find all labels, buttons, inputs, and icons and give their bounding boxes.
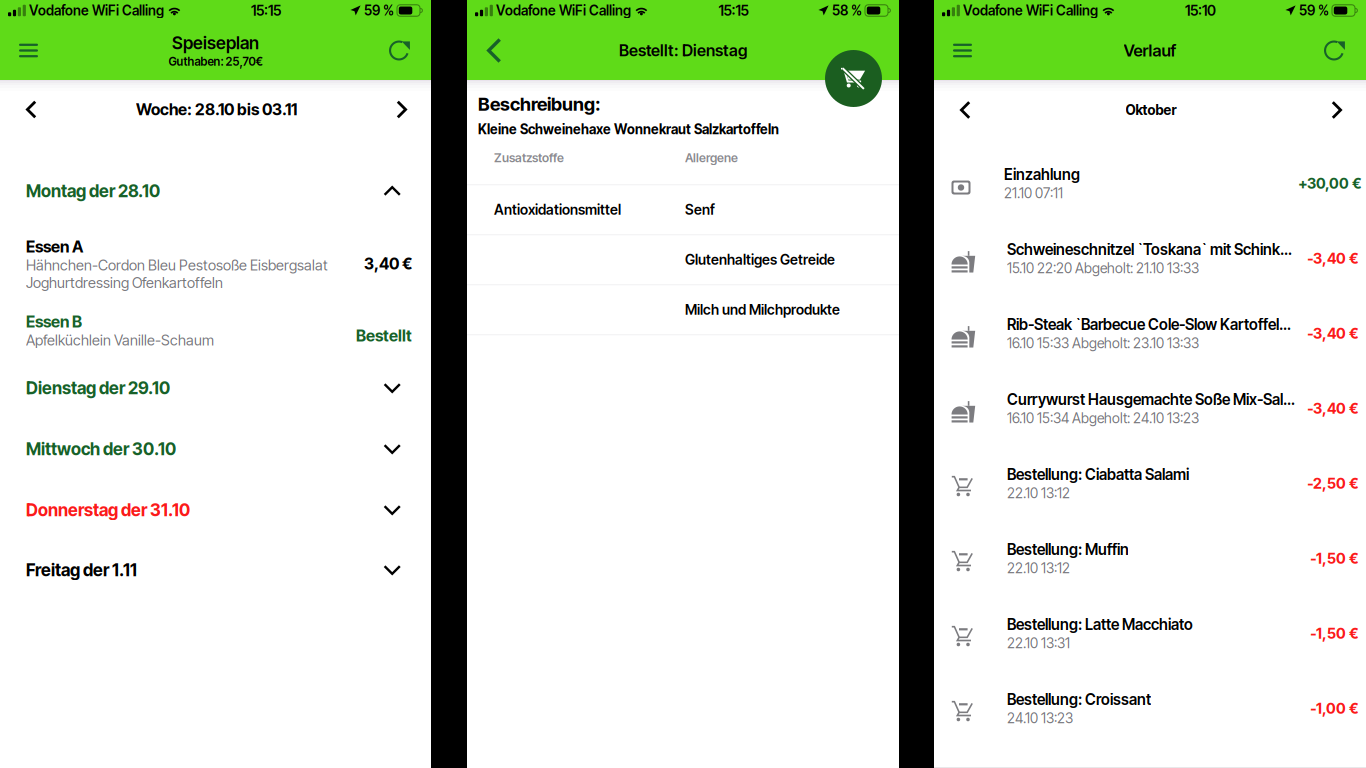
button[interactable]: Menu [934,21,991,80]
staticText: -3,40 € [1307,325,1359,342]
staticText: 59 % [1296,2,1332,19]
staticText: 21.10 07:11 [1004,185,1063,202]
staticText: 15:10 [1185,2,1216,19]
staticText: Essen A [26,237,83,256]
button[interactable]: Bestellung: Croissant [934,671,1366,746]
staticText: Bestellung: Latte Macchiato [1007,615,1193,634]
button[interactable]: Menu [0,21,57,80]
button[interactable]: Montag der 28.10 [0,176,431,206]
button[interactable]: Mittwoch der 30.10 [0,434,431,464]
staticText: Montag der 28.10 [26,181,160,201]
staticText: +30,00 € [1298,175,1362,192]
staticText: 16.10 15:34 Abgeholt: 24.10 13:23 [1007,410,1199,427]
staticText: Beschreibung: [478,93,601,115]
staticText: Glutenhaltiges Getreide [685,251,835,268]
staticText: Joghurtdressing Ofenkartoffeln [26,274,223,292]
button[interactable]: Dienstag der 29.10 [0,373,431,403]
button[interactable]: Freitag der 1.11 [0,555,431,585]
staticText: 24.10 13:23 [1007,710,1073,727]
staticText: -1,50 € [1310,625,1359,642]
staticText: Einzahlung [1004,165,1080,184]
staticText: Allergene [685,150,738,165]
staticText: -3,40 € [1307,400,1359,417]
button[interactable]: Currywurst Hausgemachte Soße Mix-Salat… [934,371,1366,446]
staticText: Vodafone WiFi Calling [26,2,167,19]
button[interactable]: Bestellung: Ciabatta Salami [934,446,1366,521]
staticText: Bestellt [356,326,412,345]
button[interactable]: Back [467,21,521,80]
button[interactable]: Next month [1311,80,1366,140]
staticText: Hähnchen-Cordon Bleu Pestosoße Eisbergsa… [26,256,328,274]
button[interactable]: Donnerstag der 31.10 [0,495,431,525]
staticText: 58 % [829,2,865,19]
staticText: -1,00 € [1310,700,1359,717]
button[interactable]: Rib-Steak `Barbecue Cole-Slow Kartoffele… [934,296,1366,371]
button[interactable]: Essen A [0,237,431,292]
staticText: Guthaben: 25,70€ [168,54,262,69]
button[interactable]: Next week [376,80,431,139]
staticText: Oktober [1125,102,1176,118]
button[interactable]: Bestellung: Muffin [934,521,1366,596]
staticText: -1,50 € [1310,550,1359,567]
staticText: Kleine Schweinehaxe Wonnekraut Salzkarto… [478,121,779,137]
staticText: 22.10 13:31 [1007,635,1070,652]
staticText: Antioxidationsmittel [494,201,621,218]
staticText: -3,40 € [1307,250,1359,267]
staticText: 15:15 [718,2,748,19]
staticText: Bestellung: Muffin [1007,540,1129,559]
staticText: 15:15 [251,2,281,19]
staticText: Woche: 28.10 bis 03.11 [136,100,297,119]
staticText: Bestellung: Croissant [1007,690,1151,709]
staticText: Freitag der 1.11 [26,560,137,580]
staticText: Bestellt: Dienstag [619,41,747,60]
staticText: Milch und Milchprodukte [685,301,840,318]
staticText: Rib-Steak `Barbecue Cole-Slow Kartoffele… [1007,315,1297,334]
button[interactable]: Einzahlung [934,146,1366,221]
staticText: Mittwoch der 30.10 [26,439,176,459]
staticText: 22.10 13:12 [1007,485,1070,502]
staticText: Speiseplan [172,32,259,53]
staticText: Vodafone WiFi Calling [960,2,1101,19]
button[interactable]: Refresh [371,21,431,80]
staticText: Dienstag der 29.10 [26,378,170,398]
staticText: 22.10 13:12 [1007,560,1070,577]
staticText: 15.10 22:20 Abgeholt: 21.10 13:33 [1007,260,1199,277]
staticText: 16.10 15:33 Abgeholt: 23.10 13:33 [1007,335,1199,352]
staticText: 3,40 € [364,254,412,273]
button[interactable]: Bestellung: Latte Macchiato [934,596,1366,671]
staticText: Apfelküchlein Vanille-Schaum [26,331,214,349]
staticText: Zusatzstoffe [494,150,564,165]
staticText: -2,50 € [1307,475,1359,492]
button[interactable]: Essen B [0,312,431,349]
staticText: Schweineschnitzel `Toskana` mit Schinken… [1007,240,1297,259]
staticText: 59 % [361,2,397,19]
staticText: Currywurst Hausgemachte Soße Mix-Salat… [1007,390,1297,409]
staticText: Senf [685,201,715,218]
button[interactable]: Previous week [0,80,57,139]
staticText: Donnerstag der 31.10 [26,500,190,520]
button[interactable]: Schweineschnitzel `Toskana` mit Schinken… [934,221,1366,296]
staticText: Bestellung: Ciabatta Salami [1007,465,1189,484]
staticText: Verlauf [1123,40,1176,60]
button[interactable]: Cancel order [825,50,882,107]
button[interactable]: Refresh [1306,21,1366,80]
button[interactable]: Previous month [934,80,991,140]
staticText: Vodafone WiFi Calling [493,2,634,19]
staticText: Essen B [26,312,82,331]
